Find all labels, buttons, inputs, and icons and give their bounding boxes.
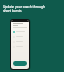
button[interactable] [13,45,27,48]
staticText: Update your coach through short bursts [3,5,50,12]
button[interactable] [13,30,27,33]
button[interactable]: Record update [13,61,27,66]
button[interactable] [13,40,27,43]
button[interactable] [13,35,27,38]
